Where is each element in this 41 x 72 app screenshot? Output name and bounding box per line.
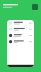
button[interactable]	[7, 39, 34, 45]
button[interactable]: Profile	[32, 4, 38, 10]
button[interactable]	[7, 32, 34, 39]
button[interactable]	[7, 20, 34, 26]
button[interactable]	[7, 26, 34, 32]
